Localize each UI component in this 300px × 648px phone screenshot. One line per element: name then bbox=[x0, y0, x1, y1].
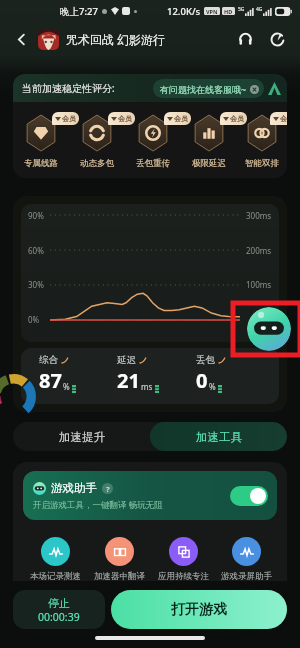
staticText: 87 bbox=[39, 367, 62, 394]
staticText: 会员 bbox=[280, 114, 287, 123]
button[interactable]: Speed test bbox=[264, 26, 290, 52]
staticText: HD bbox=[224, 8, 233, 15]
staticText: 会员 bbox=[174, 114, 188, 123]
staticText: ms bbox=[141, 381, 153, 392]
staticText: 极限延迟 bbox=[192, 158, 226, 169]
staticText: 有问题找在线客服哦~ bbox=[160, 83, 247, 95]
staticText: 300ms bbox=[246, 210, 272, 221]
staticText: 丢包重传 bbox=[136, 158, 170, 169]
staticText: 5G bbox=[238, 6, 245, 13]
staticText: 会员 bbox=[62, 114, 76, 123]
staticText: 游戏录屏助手 bbox=[221, 571, 272, 581]
button[interactable]: 会员 bbox=[69, 111, 125, 169]
staticText: 动态多包 bbox=[80, 158, 114, 169]
button[interactable]: 游戏助手 bbox=[23, 471, 277, 520]
button[interactable]: 打开游戏 bbox=[111, 590, 287, 629]
button[interactable]: Toggle game assistant bbox=[230, 486, 268, 506]
staticText: 咒术回战 幻影游行 bbox=[66, 31, 166, 47]
button[interactable]: 当前加速稳定性评分: bbox=[13, 74, 287, 102]
button[interactable]: 加速器中翻译 bbox=[87, 537, 151, 581]
staticText: 0ms bbox=[256, 314, 272, 325]
staticText: 30% bbox=[28, 279, 44, 290]
button[interactable]: 会员 bbox=[181, 111, 237, 169]
button[interactable]: 会员 bbox=[13, 111, 69, 169]
staticText: 游戏助手 bbox=[51, 481, 97, 495]
staticText: VPN bbox=[206, 8, 218, 15]
staticText: 00:00:39 bbox=[38, 610, 80, 624]
staticText: 晚上7:27 bbox=[60, 5, 98, 18]
staticText: 应用持续专注 bbox=[158, 571, 209, 581]
button[interactable]: 加速工具 bbox=[150, 422, 287, 451]
button[interactable]: 会员 bbox=[237, 111, 287, 169]
staticText: 当前加速稳定性评分: bbox=[22, 81, 115, 95]
button[interactable]: Assistant robot bbox=[247, 307, 291, 351]
button[interactable]: Back bbox=[10, 28, 32, 50]
staticText: 加速器中翻译 bbox=[94, 571, 145, 581]
button[interactable]: 本场记录测速 bbox=[23, 537, 87, 581]
button[interactable]: Headphones bbox=[232, 26, 258, 52]
button[interactable]: 游戏录屏助手 bbox=[215, 537, 277, 581]
staticText: 0% bbox=[28, 314, 40, 325]
staticText: 加速提升 bbox=[59, 430, 105, 444]
staticText: 停止 bbox=[48, 596, 70, 610]
staticText: 12.0K/s bbox=[167, 5, 201, 18]
staticText: 100ms bbox=[246, 279, 272, 290]
staticText: 加速工具 bbox=[196, 430, 242, 444]
staticText: 0 bbox=[196, 367, 208, 394]
staticText: % bbox=[209, 381, 216, 392]
staticText: 打开游戏 bbox=[171, 601, 227, 619]
staticText: 延迟 bbox=[117, 354, 136, 366]
button[interactable]: 会员 bbox=[125, 111, 181, 169]
button[interactable]: 应用持续专注 bbox=[151, 537, 215, 581]
staticText: 90% bbox=[28, 210, 44, 221]
staticText: 会员 bbox=[230, 114, 244, 123]
staticText: 200ms bbox=[246, 245, 272, 256]
button[interactable]: 停止 bbox=[13, 590, 105, 629]
staticText: 4G bbox=[256, 6, 263, 13]
staticText: % bbox=[63, 381, 70, 392]
staticText: 丢包 bbox=[196, 354, 215, 366]
button[interactable]: 加速提升 bbox=[13, 422, 150, 451]
staticText: 综合 bbox=[39, 354, 58, 366]
staticText: 智能双排 bbox=[245, 158, 279, 169]
staticText: 60% bbox=[28, 245, 44, 256]
staticText: ? bbox=[106, 484, 110, 494]
staticText: 会员 bbox=[118, 114, 132, 123]
staticText: 本场记录测速 bbox=[30, 571, 81, 581]
staticText: 专属线路 bbox=[24, 158, 58, 169]
staticText: 开启游戏工具，一键翻译 畅玩无阻 bbox=[33, 499, 163, 511]
staticText: 21 bbox=[117, 367, 140, 394]
